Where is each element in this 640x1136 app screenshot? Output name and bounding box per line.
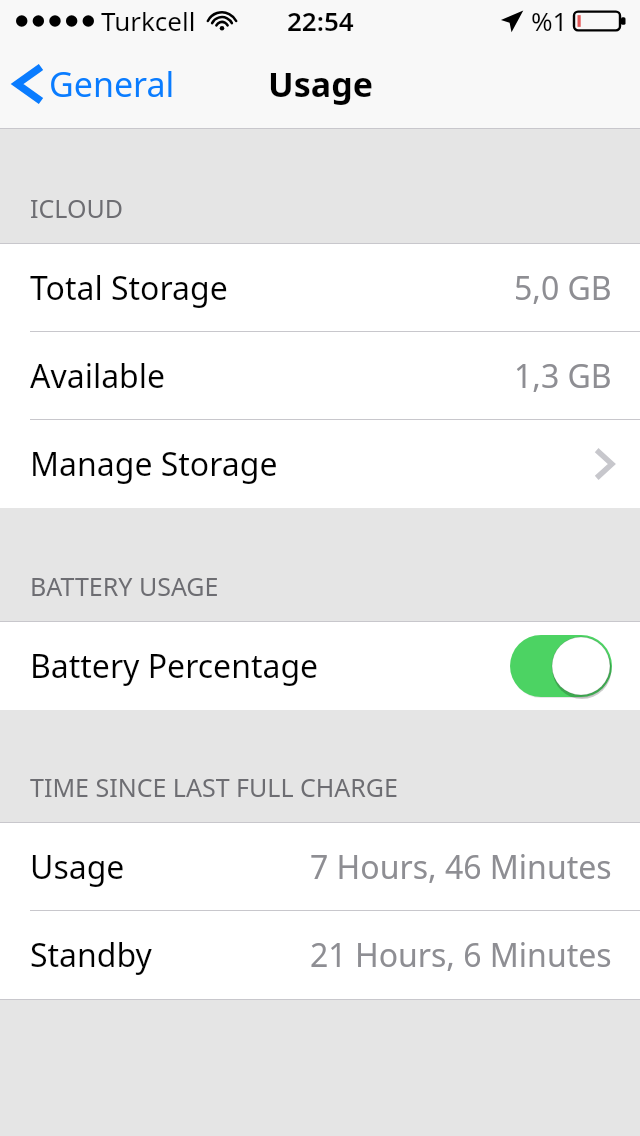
staticText: 5,0 GB xyxy=(514,266,612,310)
staticText: Standby xyxy=(30,933,152,977)
staticText: Available xyxy=(30,354,166,398)
staticText: 7 Hours, 46 Minutes xyxy=(310,845,612,889)
staticText: 21 Hours, 6 Minutes xyxy=(310,933,612,977)
staticText: %1 xyxy=(531,3,568,38)
button[interactable]: Battery Percentage toggle, on xyxy=(510,635,612,697)
staticText: Turkcell xyxy=(101,3,196,38)
staticText: Usage xyxy=(268,61,373,107)
staticText: Battery Percentage xyxy=(30,644,319,688)
button[interactable]: Available xyxy=(0,332,640,420)
button[interactable]: Usage xyxy=(0,823,640,911)
button[interactable]: Standby xyxy=(0,911,640,999)
button[interactable]: Manage Storage xyxy=(0,420,640,508)
staticText: Usage xyxy=(30,845,125,889)
button[interactable]: General xyxy=(0,40,187,128)
staticText: BATTERY USAGE xyxy=(30,569,219,603)
staticText: Manage Storage xyxy=(30,442,278,486)
staticText: 1,3 GB xyxy=(514,354,612,398)
staticText: TIME SINCE LAST FULL CHARGE xyxy=(30,770,398,804)
staticText: Total Storage xyxy=(30,266,228,310)
button[interactable]: Total Storage xyxy=(0,244,640,332)
button[interactable]: Battery Percentage xyxy=(0,622,640,710)
staticText: ICLOUD xyxy=(30,191,123,225)
staticText: 22:54 xyxy=(287,3,354,38)
staticText: General xyxy=(49,61,175,107)
